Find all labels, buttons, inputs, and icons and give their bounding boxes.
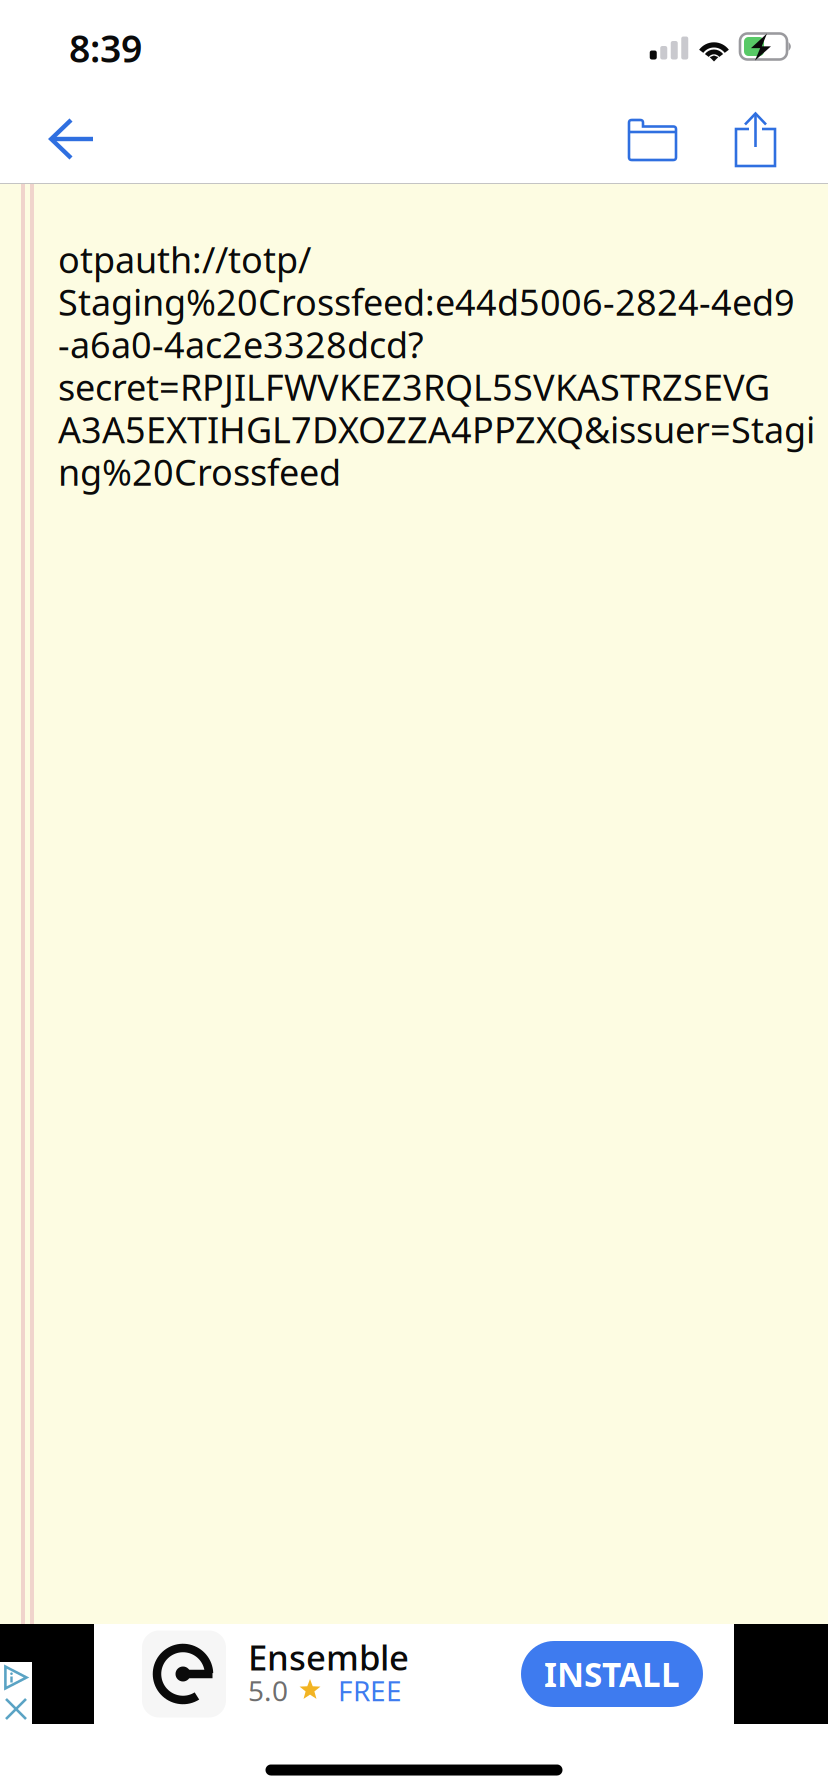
button[interactable]: Move to folder bbox=[597, 96, 709, 184]
staticText: -a6a0-4ac2e3328dcd? bbox=[58, 320, 424, 368]
button[interactable]: Ad choices bbox=[0, 1662, 32, 1724]
staticText: 5.0 bbox=[248, 1672, 288, 1709]
button[interactable]: Back bbox=[0, 96, 144, 184]
staticText: FREE bbox=[338, 1672, 402, 1709]
staticText: Staging%20Crossfeed:e44d5006-2824-4ed9 bbox=[58, 278, 795, 326]
staticText: 8:39 bbox=[69, 23, 142, 73]
button[interactable]: Ensemble bbox=[0, 1624, 828, 1724]
staticText: ng%20Crossfeed bbox=[58, 448, 341, 496]
staticText: A3A5EXTIHGL7DXOZZA4PPZXQ&issuer=Stagi bbox=[58, 405, 815, 453]
staticText: secret=RPJILFWVKEZ3RQL5SVKASTRZSEVG bbox=[58, 363, 770, 411]
button[interactable]: Share bbox=[709, 96, 803, 184]
staticText: Ensemble bbox=[248, 1634, 409, 1680]
staticText: INSTALL bbox=[544, 1652, 680, 1696]
staticText: otpauth://totp/ bbox=[58, 235, 311, 283]
